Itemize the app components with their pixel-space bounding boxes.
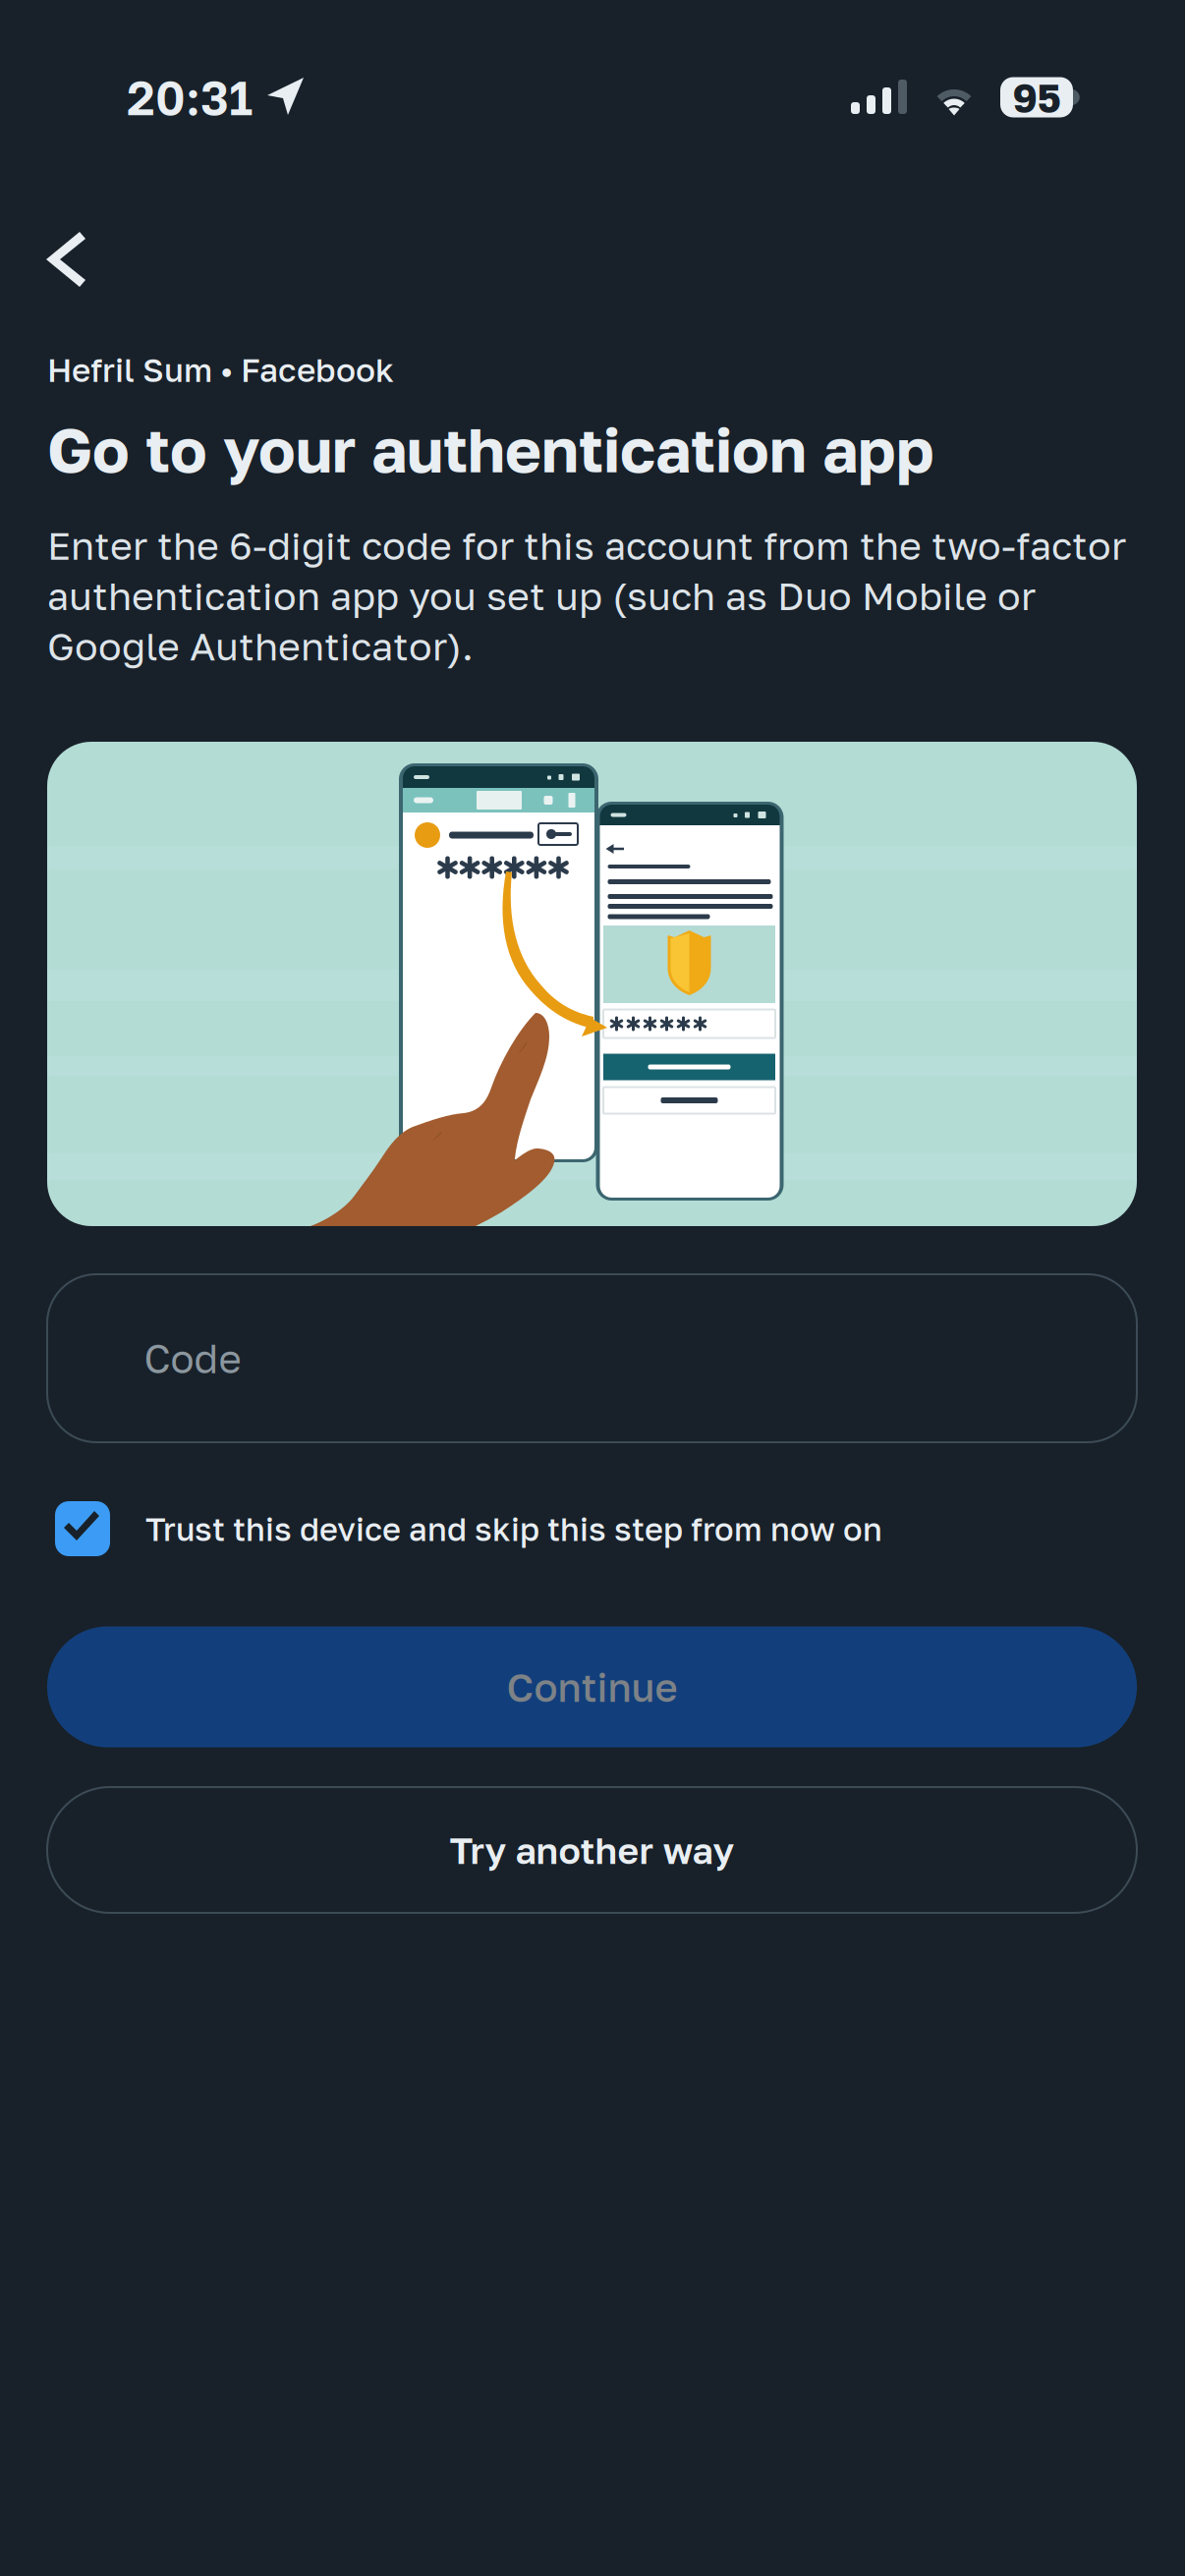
staticText: Go to your authentication app: [47, 412, 934, 486]
staticText: 95: [1013, 74, 1061, 121]
button[interactable]: Code: [47, 1274, 1137, 1442]
button[interactable]: Trust this device and skip this step fro…: [47, 1501, 1137, 1556]
staticText: Trust this device and skip this step fro…: [145, 1509, 882, 1548]
button[interactable]: Continue: [47, 1626, 1137, 1747]
button[interactable]: Back: [36, 226, 135, 293]
staticText: Hefril Sum • Facebook: [47, 350, 394, 389]
staticText: 20:31: [127, 69, 253, 126]
staticText: Try another way: [450, 1828, 734, 1872]
staticText: Enter the 6-digit code for this account …: [47, 522, 1126, 669]
staticText: Code: [144, 1335, 241, 1382]
staticText: Continue: [507, 1663, 677, 1710]
button[interactable]: Try another way: [47, 1787, 1137, 1913]
